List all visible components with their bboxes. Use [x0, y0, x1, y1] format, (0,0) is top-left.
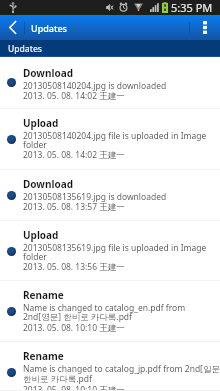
button[interactable]: Upload [0, 221, 220, 281]
staticText: 2013. 05. 08. 10:10 王建一 [23, 386, 125, 391]
staticText: 2013. 05. 08. 13:56 王建一 [23, 263, 125, 273]
staticText: 20130508135619.jpg file is uploaded in I… [23, 244, 207, 262]
staticText: 2013. 05. 08. 14:02 王建一 [23, 92, 125, 102]
staticText: Download [23, 177, 73, 191]
button[interactable]: Upload [0, 109, 220, 170]
button[interactable]: Back [0, 15, 24, 40]
staticText: Upload [23, 228, 59, 242]
staticText: Rename [23, 349, 64, 363]
staticText: Upload [23, 116, 59, 130]
staticText: 5:35 PM [171, 0, 213, 15]
staticText: 2013. 05. 08. 13:57 王建一 [23, 203, 125, 213]
staticText: 20130508140204.jpg file is uploaded in I… [23, 132, 207, 150]
staticText: 2013. 05. 08. 14:02 王建一 [23, 151, 125, 161]
button[interactable]: Rename [0, 342, 220, 391]
staticText: Updates [8, 43, 42, 55]
staticText: Download [23, 66, 73, 80]
staticText: Updates [31, 22, 67, 34]
button[interactable]: Rename [0, 281, 220, 342]
button[interactable]: More options [190, 15, 220, 40]
staticText: Name is changed to catalog_en.pdf from 2… [23, 304, 186, 323]
button[interactable]: Download [0, 57, 220, 109]
staticText: Rename [23, 288, 64, 302]
staticText: 2013. 05. 08. 10:10 王建一 [23, 324, 125, 334]
staticText: 20130508140204.jpg is downloaded [23, 82, 167, 91]
button[interactable]: Updates [0, 40, 220, 57]
staticText: Name is changed to catalog_jp.pdf from 2… [23, 365, 218, 385]
button[interactable]: Download [0, 170, 220, 221]
staticText: 20130508135619.jpg is downloaded [23, 193, 167, 202]
